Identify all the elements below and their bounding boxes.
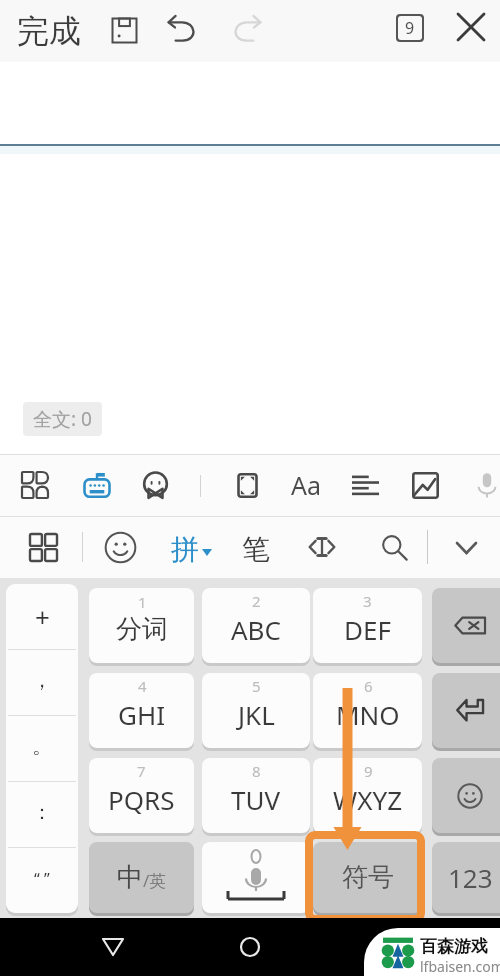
button[interactable]: 笔 (237, 528, 275, 571)
staticText: 拼 (171, 532, 199, 567)
staticText: 1 (138, 592, 147, 612)
staticText: 3 (363, 591, 372, 611)
staticText: DEF (344, 612, 391, 647)
button[interactable]: Emoji (134, 464, 176, 506)
staticText: + (35, 599, 50, 634)
staticText: 笔 (242, 532, 270, 567)
button[interactable]: 完成 (11, 6, 87, 56)
button[interactable]: Move cursor (300, 525, 344, 569)
button[interactable]: Insert image (404, 464, 446, 506)
staticText: 6 (364, 676, 373, 696)
button[interactable]: Keyboard (76, 464, 118, 506)
button[interactable]: Backspace (432, 588, 500, 663)
button[interactable]: Recents (363, 923, 411, 971)
button[interactable]: Panels (21, 525, 65, 569)
staticText: 9 (405, 17, 415, 39)
staticText: ， (32, 668, 52, 693)
staticText: 符号 (342, 861, 394, 894)
button[interactable]: 8 (202, 758, 310, 833)
button[interactable]: ， (6, 650, 78, 715)
staticText: “ ” (34, 868, 50, 890)
button[interactable]: Emoji (98, 525, 142, 569)
staticText: 9 (364, 761, 373, 781)
staticText: 123 (448, 860, 493, 895)
button[interactable]: 6 (313, 673, 422, 748)
button[interactable]: Enter (432, 673, 500, 748)
staticText: JKL (238, 697, 275, 732)
button[interactable]: ： (6, 782, 78, 847)
button[interactable]: Undo (160, 8, 204, 52)
staticText: PQRS (108, 782, 175, 817)
staticText: 分词 (116, 613, 168, 646)
button[interactable]: Word count (388, 6, 432, 50)
staticText: 2 (252, 591, 261, 611)
staticText: 百森游戏 (420, 936, 488, 957)
button[interactable]: 2 (202, 588, 310, 663)
staticText: TUV (231, 782, 281, 817)
button[interactable]: Space (202, 842, 310, 913)
button[interactable]: 4 (89, 673, 194, 748)
button[interactable]: 中 (89, 842, 194, 913)
button[interactable]: Redo (225, 8, 269, 52)
button[interactable]: + (6, 584, 78, 649)
staticText: /英 (143, 869, 167, 892)
button[interactable]: Voice input (466, 464, 500, 506)
button[interactable]: Emoji (432, 758, 500, 833)
button[interactable]: 123 (432, 842, 500, 913)
button[interactable]: Save (102, 8, 146, 52)
button[interactable]: 全文: 0 (23, 402, 102, 436)
button[interactable]: Apps (14, 464, 56, 506)
button[interactable]: “ ” (6, 848, 78, 913)
button[interactable]: Back (89, 923, 137, 971)
staticText: 7 (137, 761, 146, 781)
staticText: 8 (252, 761, 261, 781)
button[interactable]: 拼 (166, 528, 217, 571)
button[interactable]: Home (226, 923, 274, 971)
staticText: 全文: 0 (33, 406, 92, 432)
button[interactable]: Hide keyboard (444, 526, 488, 570)
button[interactable]: 1 (89, 588, 194, 663)
staticText: 5 (252, 676, 261, 696)
staticText: Aa (291, 468, 322, 502)
staticText: 4 (138, 676, 147, 696)
staticText: 完成 (17, 11, 81, 51)
button[interactable]: 3 (313, 588, 422, 663)
staticText: MNO (336, 697, 400, 732)
button[interactable]: 7 (89, 758, 194, 833)
button[interactable]: Align (344, 464, 386, 506)
button[interactable]: Select area (226, 464, 268, 506)
button[interactable]: Aa (284, 467, 328, 503)
staticText: WXYZ (333, 782, 403, 817)
staticText: 中 (117, 861, 143, 894)
button[interactable]: 符号 (313, 842, 422, 913)
staticText: 。 (32, 734, 52, 759)
staticText: ： (32, 800, 52, 825)
button[interactable]: Close (449, 5, 493, 49)
button[interactable]: 5 (202, 673, 310, 748)
staticText: GHI (118, 697, 166, 732)
staticText: ABC (231, 612, 281, 647)
button[interactable]: 。 (6, 716, 78, 781)
button[interactable]: 9 (313, 758, 422, 833)
staticText: lfbaisen.com (420, 957, 500, 976)
button[interactable]: Search (372, 525, 416, 569)
